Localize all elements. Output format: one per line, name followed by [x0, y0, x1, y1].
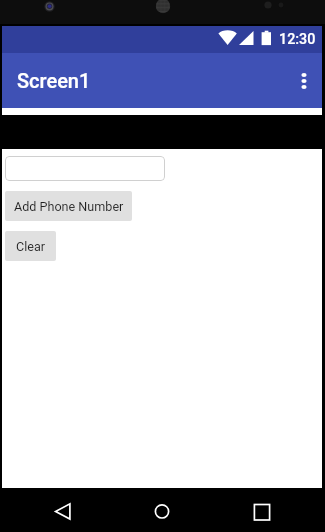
staticText: Screen1: [17, 69, 91, 92]
button[interactable]: [5, 156, 165, 181]
button[interactable]: Back: [44, 489, 88, 532]
staticText: 12:30: [279, 31, 316, 48]
button[interactable]: Home: [140, 489, 184, 532]
button[interactable]: Recents: [240, 490, 284, 532]
button[interactable]: Add Phone Number: [5, 191, 132, 221]
button[interactable]: More options: [284, 61, 324, 101]
staticText: Clear: [16, 239, 46, 254]
staticText: Add Phone Number: [14, 199, 124, 214]
button[interactable]: Clear: [5, 231, 56, 261]
